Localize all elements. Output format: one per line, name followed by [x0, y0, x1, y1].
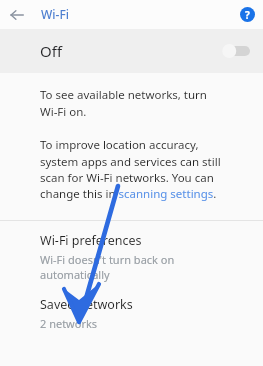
button[interactable]: Wi-Fi preferences	[0, 221, 263, 287]
staticText: To improve location accuracy, system app…	[40, 137, 221, 201]
staticText: Off	[40, 41, 63, 61]
staticText: Wi-Fi preferences	[40, 232, 142, 249]
button[interactable]: Help	[238, 5, 257, 24]
button[interactable]: Back	[6, 4, 28, 26]
staticText: 2 networks	[40, 316, 98, 331]
staticText: Wi-Fi	[41, 6, 69, 22]
button[interactable]: Saved networks	[0, 287, 263, 335]
button[interactable]: Off	[0, 29, 263, 73]
staticText: Wi-Fi doesn't turn back on automatically	[40, 252, 175, 282]
staticText: To see available networks, turn Wi-Fi on…	[40, 87, 207, 119]
staticText: Saved networks	[40, 296, 133, 313]
staticText: ?	[245, 8, 250, 22]
button[interactable]: Wi-Fi toggle, off	[222, 44, 250, 58]
